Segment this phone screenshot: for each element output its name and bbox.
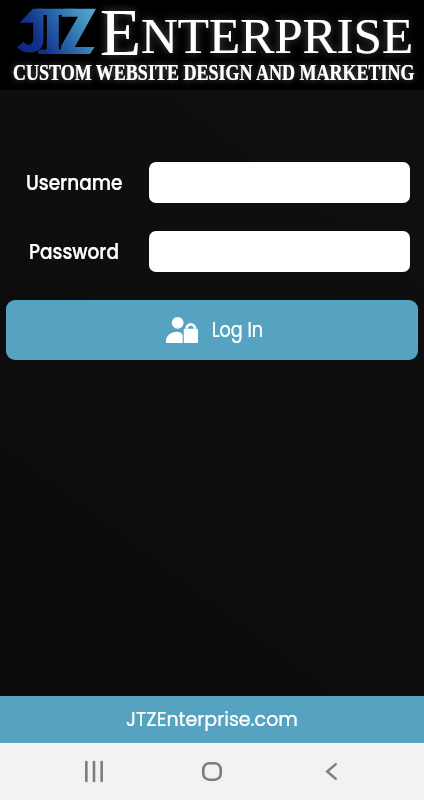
staticText: NTERPRISE [141, 8, 414, 64]
button[interactable]: Recent apps [54, 743, 134, 800]
button[interactable]: JTZEnterprise.com [0, 696, 424, 743]
button[interactable]: Home [172, 743, 252, 800]
staticText: JTZEnterprise.com [126, 706, 298, 733]
button[interactable]: Log In [6, 300, 418, 360]
staticText: E [100, 0, 141, 69]
button[interactable] [149, 162, 410, 203]
button[interactable]: Back [291, 743, 371, 800]
staticText: Log In [212, 315, 264, 346]
staticText: Username [26, 168, 123, 198]
staticText: CUSTOM WEBSITE DESIGN AND MARKETING [13, 59, 415, 85]
staticText: Password [29, 237, 120, 267]
button[interactable] [149, 231, 410, 272]
